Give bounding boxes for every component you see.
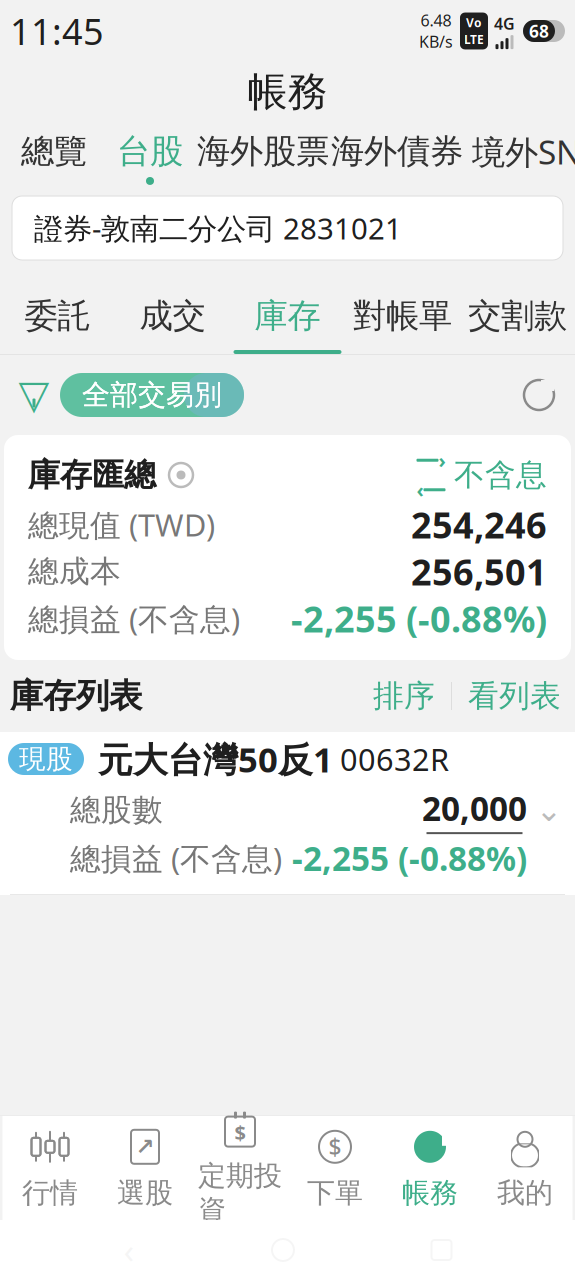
staticText: 總損益 (不含息) <box>28 598 240 639</box>
staticText: 海外股票 <box>197 131 329 172</box>
staticText: 帳務 <box>402 1176 458 1210</box>
staticText: 現股 <box>19 743 73 775</box>
staticText: 定期投資 <box>198 1159 282 1227</box>
button[interactable]: 證券-敦南二分公司 2831021 <box>12 196 563 260</box>
staticText: 全部交易別 <box>82 378 222 412</box>
staticText: -2,255 (-0.88%) <box>291 595 547 642</box>
staticText: › <box>438 447 445 473</box>
button[interactable]: 台股 <box>104 122 196 194</box>
button[interactable]: 全部交易別 <box>60 373 244 417</box>
button[interactable]: 海外股票 <box>196 122 330 194</box>
staticText: LTE <box>464 31 484 47</box>
button[interactable]: 現股 <box>0 732 575 895</box>
staticText: 庫存 <box>254 295 320 336</box>
staticText: ‹ <box>416 476 423 503</box>
staticText: ↗ <box>135 1134 154 1160</box>
button[interactable]: 成交 <box>115 282 230 354</box>
staticText: 256,501 <box>411 548 547 595</box>
button[interactable]: Filter <box>8 367 60 423</box>
button[interactable]: 總覽 <box>4 122 104 194</box>
button[interactable]: 帳務 <box>382 1116 477 1220</box>
button[interactable]: 對帳單 <box>345 282 460 354</box>
staticText: 總現值 (TWD) <box>28 504 215 545</box>
staticText: ▽ <box>18 372 49 418</box>
staticText: 總股數 <box>70 791 163 829</box>
button[interactable]: 交割款 <box>460 282 575 354</box>
button[interactable]: 看列表 <box>452 670 575 722</box>
staticText: 下單 <box>307 1176 363 1210</box>
staticText: 海外債券 <box>331 131 463 172</box>
staticText: 台股 <box>117 131 183 172</box>
staticText: 4G <box>494 13 515 34</box>
staticText: 庫存列表 <box>10 675 142 716</box>
staticText: 元大台灣50反1 <box>98 736 333 782</box>
staticText: ⌄ <box>535 792 562 828</box>
button[interactable]: Toggle visibility <box>156 462 196 488</box>
staticText: 帳務 <box>247 67 327 116</box>
staticText: 行情 <box>22 1176 78 1210</box>
staticText: 成交 <box>139 295 205 336</box>
staticText: 總損益 (不含息) <box>70 838 282 878</box>
staticText: 總覽 <box>21 131 87 172</box>
button[interactable]: 排序 <box>357 670 451 722</box>
button[interactable]: ↗ <box>97 1116 192 1220</box>
staticText: Vo <box>466 15 482 30</box>
staticText: 選股 <box>117 1176 173 1210</box>
staticText: 總成本 <box>28 553 121 590</box>
staticText: 證券-敦南二分公司 2831021 <box>34 208 402 247</box>
button[interactable]: $ <box>287 1116 382 1220</box>
button[interactable]: 委託 <box>0 282 115 354</box>
staticText: 6.48 <box>420 10 451 31</box>
button[interactable]: Refresh <box>511 367 567 423</box>
staticText: -2,255 (-0.88%) <box>292 836 527 880</box>
staticText: 254,246 <box>411 501 547 548</box>
staticText: 看列表 <box>468 677 561 715</box>
button[interactable]: 行情 <box>2 1116 97 1220</box>
staticText: $ <box>234 1119 245 1146</box>
staticText: 境外SN <box>472 129 575 174</box>
staticText: 68 <box>529 19 549 42</box>
button[interactable]: 庫存 <box>230 282 345 354</box>
button[interactable]: › <box>416 456 547 494</box>
button[interactable]: 我的 <box>477 1116 572 1220</box>
staticText: 對帳單 <box>353 295 452 336</box>
staticText: $ <box>328 1132 341 1162</box>
staticText: 20,000 <box>422 786 527 830</box>
staticText: 我的 <box>497 1176 553 1210</box>
staticText: 11:45 <box>10 7 104 55</box>
staticText: 庫存匯總 <box>28 455 156 495</box>
staticText: KB/s <box>419 31 453 52</box>
button[interactable]: $ <box>192 1116 287 1220</box>
staticText: 全部交易別 <box>82 378 222 412</box>
button[interactable]: 海外債券 <box>330 122 464 194</box>
button[interactable]: 境外SN <box>464 122 575 194</box>
staticText: 不含息 <box>454 456 547 494</box>
staticText: 00632R <box>340 739 449 779</box>
staticText: 委託 <box>24 295 90 336</box>
staticText: 排序 <box>373 677 435 715</box>
staticText: 交割款 <box>468 295 567 336</box>
